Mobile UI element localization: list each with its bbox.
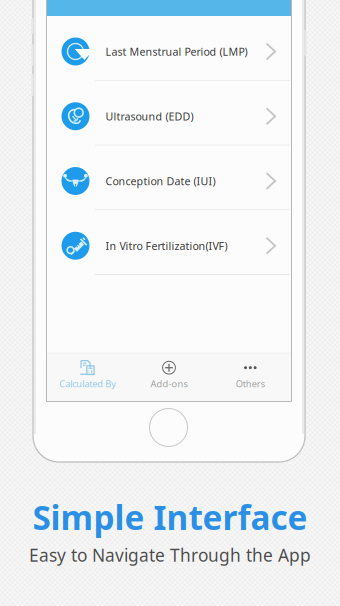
staticText: In Vitro Fertilization(IVF) — [105, 239, 227, 253]
staticText: Others — [236, 377, 265, 390]
staticText: Easy to Navigate Through the App — [29, 543, 311, 566]
button[interactable]: In Vitro Fertilization(IVF) — [47, 210, 291, 275]
button[interactable]: Add-ons — [128, 354, 210, 401]
staticText: Ultrasound (EDD) — [105, 109, 193, 123]
staticText: Simple Interface — [32, 495, 307, 539]
button[interactable]: Ultrasound (EDD) — [47, 81, 291, 146]
button[interactable]: Conception Date (IUI) — [47, 145, 291, 210]
button[interactable]: Last Menstrual Period (LMP) — [47, 16, 291, 81]
staticText: Conception Date (IUI) — [105, 174, 215, 188]
staticText: Last Menstrual Period (LMP) — [105, 44, 247, 59]
staticText: Calculated By — [59, 377, 116, 390]
button[interactable]: Others — [210, 354, 291, 401]
staticText: Add-ons — [150, 377, 187, 390]
button[interactable]: Calculated By — [47, 354, 128, 401]
